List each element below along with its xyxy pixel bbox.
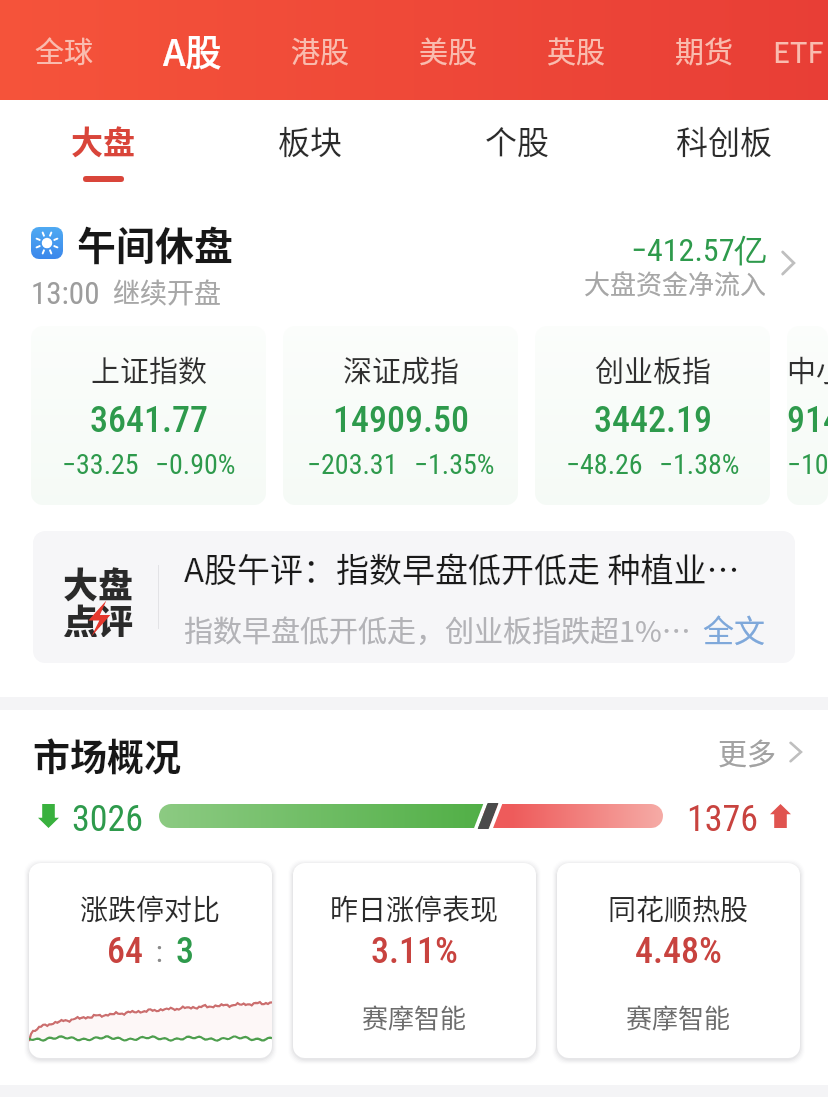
staticText: 1376: [687, 798, 759, 834]
staticText: 3.11%: [371, 930, 458, 972]
button[interactable]: 涨跌停对比: [29, 863, 272, 1058]
staticText: 赛摩智能: [626, 998, 731, 1036]
button[interactable]: 美股: [384, 0, 512, 100]
button[interactable]: 大盘 点评: [33, 531, 795, 663]
staticText: 13:00: [31, 275, 100, 311]
button[interactable]: ETF: [768, 0, 828, 100]
staticText: ETF: [773, 29, 824, 71]
button[interactable]: 科创板: [621, 100, 828, 190]
staticText: −48.26: [566, 448, 643, 481]
staticText: 板块: [278, 117, 343, 163]
staticText: 3: [176, 930, 194, 972]
staticText: 更多: [718, 731, 777, 773]
button[interactable]: 个股: [414, 100, 621, 190]
staticText: 大盘 点评: [63, 557, 134, 637]
staticText: 继续开盘: [113, 272, 221, 311]
other: Details: [781, 251, 795, 275]
button[interactable]: 大盘: [0, 100, 207, 190]
button[interactable]: 期货: [640, 0, 768, 100]
button[interactable]: 午间休盘: [0, 214, 828, 312]
staticText: 3026: [72, 798, 144, 834]
staticText: 3442.19: [594, 399, 713, 441]
staticText: 上证指数: [91, 348, 208, 390]
staticText: −102.40: [787, 448, 828, 481]
staticText: 同花顺热股: [608, 888, 749, 929]
staticText: 全文: [703, 606, 765, 651]
button[interactable]: 更多: [718, 731, 802, 773]
staticText: 大盘: [71, 117, 136, 163]
button[interactable]: 中小板指: [787, 326, 828, 505]
staticText: 指数早盘低开低走，创业板指跌超1%…: [184, 608, 691, 650]
staticText: 14909.50: [333, 399, 470, 441]
staticText: 大盘资金净流入: [584, 264, 767, 302]
staticText: 64: [107, 930, 143, 972]
button[interactable]: 创业板指: [535, 326, 770, 505]
staticText: −412.57亿: [631, 230, 767, 270]
button[interactable]: 上证指数: [31, 326, 266, 505]
staticText: 科创板: [676, 117, 773, 163]
staticText: 午间休盘: [77, 215, 234, 271]
staticText: −33.25: [62, 448, 139, 481]
button[interactable]: 板块: [207, 100, 414, 190]
staticText: 昨日涨停表现: [330, 888, 499, 929]
button[interactable]: 深证成指: [283, 326, 518, 505]
staticText: 赛摩智能: [362, 998, 467, 1036]
button[interactable]: 同花顺热股: [557, 863, 800, 1058]
staticText: :: [150, 934, 169, 969]
staticText: A股午评：指数早盘低开低走 种植业…: [184, 544, 740, 592]
staticText: −1.35%: [414, 448, 495, 481]
staticText: 个股: [485, 117, 550, 163]
staticText: 4.48%: [635, 930, 722, 972]
button[interactable]: 港股: [256, 0, 384, 100]
staticText: 美股: [419, 29, 478, 71]
staticText: 创业板指: [595, 348, 712, 390]
staticText: −203.31: [307, 448, 398, 481]
button[interactable]: 全球: [0, 0, 128, 100]
button[interactable]: A股: [128, 0, 256, 100]
button[interactable]: 昨日涨停表现: [293, 863, 536, 1058]
staticText: 港股: [291, 29, 350, 71]
staticText: 中小板指: [787, 348, 828, 390]
staticText: −0.90%: [155, 448, 236, 481]
staticText: 全球: [35, 29, 94, 71]
staticText: 期货: [675, 29, 734, 71]
staticText: 3641.77: [90, 399, 209, 441]
staticText: A股: [163, 24, 222, 76]
staticText: 深证成指: [343, 348, 460, 390]
staticText: 英股: [547, 29, 606, 71]
staticText: 市场概况: [33, 728, 181, 776]
staticText: 9146.30: [787, 399, 828, 441]
other: More: [789, 742, 802, 762]
staticText: 涨跌停对比: [80, 888, 221, 929]
button[interactable]: 英股: [512, 0, 640, 100]
staticText: −1.38%: [659, 448, 740, 481]
